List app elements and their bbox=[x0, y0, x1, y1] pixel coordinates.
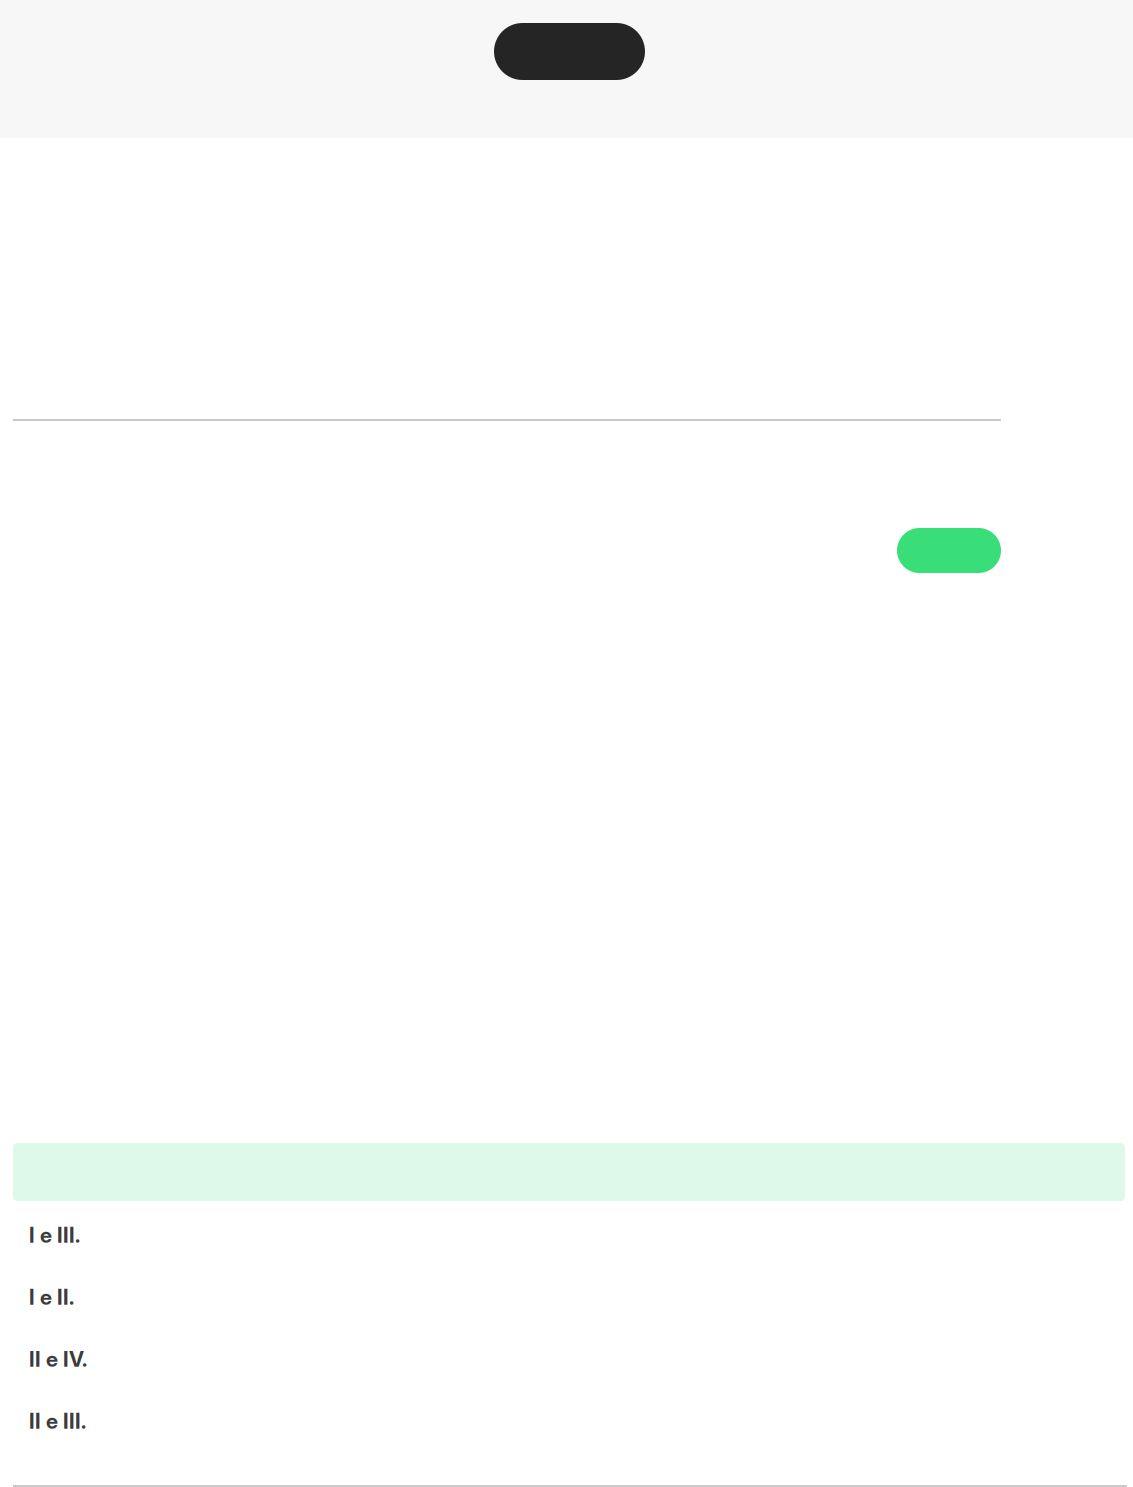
button[interactable]: I e II. bbox=[0, 1266, 1133, 1328]
staticText: I e III. bbox=[29, 1222, 80, 1248]
button[interactable]: I e III. bbox=[0, 1204, 1133, 1266]
button[interactable]: II e III. bbox=[0, 1390, 1133, 1452]
staticText: II e IV. bbox=[29, 1346, 87, 1372]
button[interactable]: II e IV. bbox=[0, 1328, 1133, 1390]
button[interactable]: Ver resposta bbox=[897, 528, 1001, 573]
staticText: II e III. bbox=[29, 1408, 86, 1434]
staticText: I e II. bbox=[29, 1284, 74, 1310]
